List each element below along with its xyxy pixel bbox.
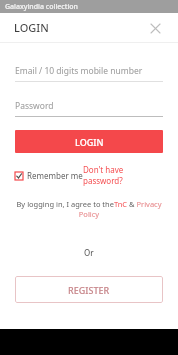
staticText: Password (15, 100, 54, 112)
button[interactable]: By logging in, I agree to theTnC & Priva… (15, 199, 163, 219)
button[interactable]: REGISTER (15, 276, 163, 303)
staticText: Galaxyindia collection (5, 2, 79, 12)
staticText: Remember me (27, 170, 83, 181)
staticText: LOGIN (14, 20, 49, 35)
staticText: Email / 10 digits mobile number (15, 65, 143, 77)
staticText: Or (84, 247, 94, 258)
staticText: By logging in, I agree to theTnC & Priva… (15, 199, 163, 219)
button[interactable]: Password (15, 96, 163, 116)
button[interactable]: Close (146, 19, 164, 37)
button[interactable]: Email / 10 digits mobile number (15, 61, 163, 81)
button[interactable]: Don't have password? (83, 164, 163, 186)
staticText: Don't have password? (83, 164, 163, 186)
button[interactable]: LOGIN (15, 130, 163, 153)
staticText: LOGIN (75, 136, 104, 148)
staticText: REGISTER (68, 284, 110, 296)
button[interactable]: Remember me (15, 170, 83, 181)
